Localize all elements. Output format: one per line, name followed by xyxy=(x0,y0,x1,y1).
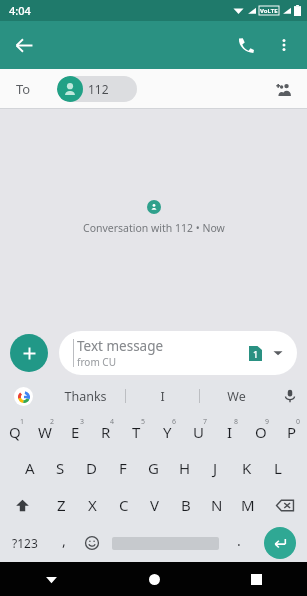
button[interactable]: , xyxy=(49,524,78,562)
staticText: 4:04 xyxy=(9,3,31,18)
staticText: L xyxy=(274,458,282,478)
button[interactable]: K xyxy=(231,449,262,486)
button[interactable]: W xyxy=(30,412,60,449)
staticText: . xyxy=(237,531,241,550)
button[interactable]: Attach xyxy=(10,334,48,372)
button[interactable]: Text message xyxy=(59,331,297,375)
staticText: X xyxy=(88,495,97,515)
button[interactable]: Q xyxy=(0,412,30,449)
button[interactable]: U xyxy=(183,412,214,449)
button[interactable]: Add recipient xyxy=(269,74,299,104)
button[interactable]: 112 xyxy=(57,76,137,102)
button[interactable]: Google xyxy=(0,380,46,412)
staticText: Conversation with 112 • Now xyxy=(83,221,225,235)
staticText: H xyxy=(179,458,191,478)
staticText: W xyxy=(38,422,52,442)
button[interactable]: Thanks xyxy=(46,380,125,412)
staticText: O xyxy=(255,422,267,442)
staticText: G xyxy=(148,458,159,478)
staticText: J xyxy=(213,458,218,478)
button[interactable]: We xyxy=(200,380,273,412)
staticText: from CU xyxy=(77,355,116,369)
staticText: R xyxy=(101,422,111,442)
staticText: 9 xyxy=(265,417,270,427)
staticText: 1 xyxy=(253,348,259,360)
button[interactable]: H xyxy=(169,449,200,486)
staticText: A xyxy=(25,458,35,478)
button[interactable]: I xyxy=(214,412,245,449)
button[interactable]: Voice input xyxy=(273,380,307,412)
button[interactable]: N xyxy=(201,486,232,524)
staticText: I xyxy=(227,422,233,442)
staticText: 0 xyxy=(296,417,301,427)
button[interactable]: L xyxy=(262,449,293,486)
staticText: E xyxy=(71,422,80,442)
button[interactable]: E xyxy=(60,412,90,449)
staticText: B xyxy=(181,495,191,515)
button[interactable]: D xyxy=(76,449,107,486)
button[interactable]: More options xyxy=(265,26,303,64)
button[interactable]: G xyxy=(138,449,169,486)
staticText: 1 xyxy=(20,417,25,427)
staticText: 5 xyxy=(141,417,146,427)
button[interactable]: ?123 xyxy=(0,524,49,562)
button[interactable]: Recents xyxy=(205,562,307,596)
staticText: Q xyxy=(9,422,21,442)
button[interactable]: Back xyxy=(5,26,43,64)
staticText: , xyxy=(62,531,66,550)
staticText: I xyxy=(160,388,165,405)
button[interactable]: A xyxy=(14,449,45,486)
button[interactable]: X xyxy=(77,486,108,524)
button[interactable]: O xyxy=(245,412,276,449)
staticText: M xyxy=(241,495,255,515)
staticText: Text message xyxy=(77,337,164,355)
staticText: To xyxy=(16,80,31,98)
button[interactable]: . xyxy=(225,524,253,562)
staticText: 6 xyxy=(172,417,177,427)
button[interactable]: R xyxy=(90,412,121,449)
button[interactable]: P xyxy=(276,412,307,449)
staticText: S xyxy=(56,458,65,478)
staticText: ?123 xyxy=(12,535,38,551)
staticText: P xyxy=(287,422,297,442)
staticText: D xyxy=(86,458,97,478)
button[interactable]: Backspace xyxy=(263,486,307,524)
staticText: We xyxy=(227,388,246,405)
button[interactable]: Choose SIM xyxy=(269,344,287,362)
staticText: N xyxy=(211,495,223,515)
button[interactable]: Space xyxy=(106,524,225,562)
button[interactable]: C xyxy=(108,486,139,524)
staticText: F xyxy=(119,458,127,478)
button[interactable]: Back xyxy=(0,562,103,596)
button[interactable]: I xyxy=(126,380,199,412)
staticText: V xyxy=(150,495,160,515)
staticText: VoLTE xyxy=(260,7,278,15)
staticText: T xyxy=(132,422,141,442)
button[interactable]: Enter xyxy=(253,524,307,562)
staticText: K xyxy=(242,458,252,478)
button[interactable]: Z xyxy=(45,486,77,524)
button[interactable]: J xyxy=(200,449,231,486)
staticText: U xyxy=(193,422,204,442)
button[interactable]: Shift xyxy=(0,486,45,524)
button[interactable]: Emoji xyxy=(78,524,106,562)
staticText: 4 xyxy=(110,417,115,427)
button[interactable]: Home xyxy=(103,562,205,596)
button[interactable]: M xyxy=(232,486,263,524)
button[interactable]: S xyxy=(45,449,76,486)
button[interactable]: Call xyxy=(227,26,265,64)
staticText: Y xyxy=(163,422,172,442)
staticText: 112 xyxy=(88,81,109,97)
staticText: C xyxy=(119,495,129,515)
staticText: Thanks xyxy=(64,388,107,405)
staticText: 8 xyxy=(234,417,239,427)
staticText: 3 xyxy=(80,417,85,427)
button[interactable]: F xyxy=(107,449,138,486)
button[interactable]: B xyxy=(170,486,201,524)
staticText: 7 xyxy=(203,417,208,427)
button[interactable]: T xyxy=(121,412,152,449)
staticText: Z xyxy=(57,495,66,515)
button[interactable]: Y xyxy=(152,412,183,449)
button[interactable]: V xyxy=(139,486,170,524)
staticText: 2 xyxy=(50,417,55,427)
